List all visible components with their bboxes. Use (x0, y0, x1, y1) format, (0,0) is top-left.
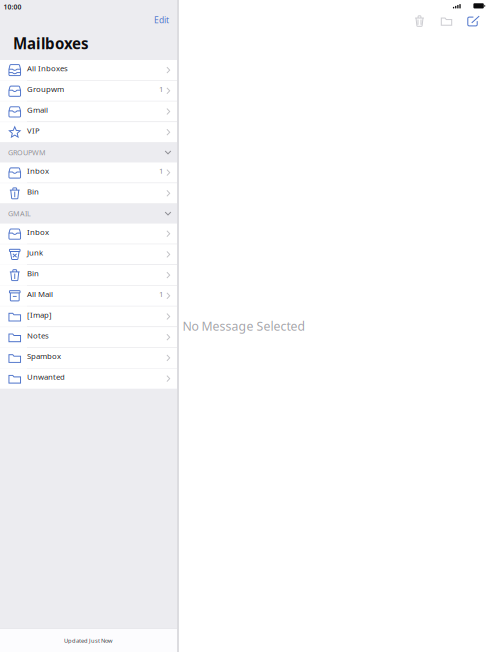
button[interactable]: Inbox (0, 224, 177, 244)
button[interactable]: GROUPWM (0, 142, 177, 162)
staticText: Unwanted (27, 371, 65, 382)
button[interactable]: [Imap] (0, 306, 177, 327)
staticText: Updated Just Now (64, 637, 113, 644)
staticText: Gmail (27, 104, 48, 115)
button[interactable]: Spambox (0, 348, 177, 368)
button[interactable]: Junk (0, 244, 177, 264)
button[interactable]: GMAIL (0, 203, 177, 224)
staticText: GMAIL (8, 209, 31, 218)
staticText: 1 (159, 165, 163, 176)
staticText: Edit (154, 14, 169, 26)
staticText: No Message Selected (182, 318, 305, 334)
button[interactable]: Groupwm (0, 81, 177, 101)
staticText: VIP (27, 125, 40, 136)
staticText: 1 (159, 84, 163, 94)
button[interactable]: Move to folder (433, 11, 460, 31)
button[interactable]: Inbox (0, 162, 177, 183)
staticText: Groupwm (27, 84, 64, 94)
button[interactable]: Edit (148, 13, 177, 27)
staticText: 10:00 (3, 2, 21, 11)
button[interactable]: Delete (406, 11, 433, 31)
button[interactable]: VIP (0, 122, 177, 142)
staticText: Inbox (27, 227, 49, 237)
button[interactable]: All Mail (0, 286, 177, 306)
staticText: 1 (159, 289, 163, 299)
staticText: Junk (27, 247, 43, 258)
staticText: All Mail (27, 289, 53, 299)
staticText: Inbox (27, 165, 49, 176)
staticText: Bin (27, 268, 39, 278)
button[interactable]: Bin (0, 183, 177, 203)
staticText: Spambox (27, 351, 61, 361)
staticText: [Imap] (27, 309, 52, 320)
staticText: All Inboxes (27, 63, 68, 73)
button[interactable]: Gmail (0, 101, 177, 122)
button[interactable]: Bin (0, 265, 177, 285)
staticText: Notes (27, 330, 49, 341)
button[interactable]: Compose (460, 11, 487, 31)
staticText: GROUPWM (8, 147, 46, 157)
button[interactable]: All Inboxes (0, 60, 177, 80)
button[interactable]: Notes (0, 327, 177, 347)
staticText: Mailboxes (13, 33, 89, 54)
staticText: Bin (27, 186, 39, 197)
button[interactable]: Unwanted (0, 368, 177, 389)
